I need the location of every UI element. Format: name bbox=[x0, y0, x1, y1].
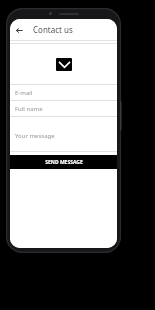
staticText: SEND MESSAGE bbox=[45, 159, 83, 166]
staticText: E-mail bbox=[15, 89, 33, 97]
staticText: Full name bbox=[15, 105, 43, 113]
button[interactable]: SEND MESSAGE bbox=[10, 155, 117, 169]
button[interactable]: Your message bbox=[10, 121, 117, 151]
button[interactable]: E-mail bbox=[10, 85, 117, 100]
staticText: Contact us bbox=[33, 24, 73, 35]
button[interactable]: Back bbox=[10, 21, 28, 39]
button[interactable]: Email bbox=[56, 58, 72, 71]
staticText: Your message bbox=[15, 132, 55, 140]
button[interactable]: Full name bbox=[10, 101, 117, 116]
